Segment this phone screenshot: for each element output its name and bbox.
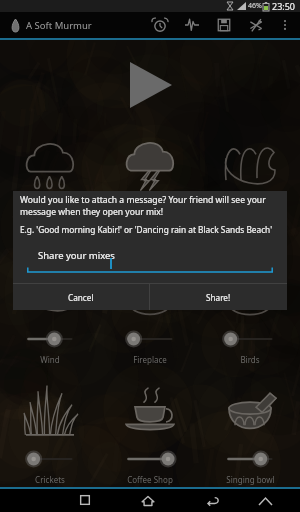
staticText: Fireplace [133,354,167,365]
button[interactable]: Wind [200,139,300,238]
staticText: Would you like to attach a message? Your… [20,194,266,206]
button[interactable]: Recents [61,489,105,512]
button[interactable]: Coffee Shop [100,386,200,485]
button[interactable]: Hide keyboard [256,492,274,510]
button[interactable]: Timer [144,12,176,38]
staticText: 23:50 [272,0,296,12]
button[interactable]: Wind [0,266,100,365]
staticText: Cancel [68,292,94,303]
staticText: A Soft Murmur [26,19,92,32]
staticText: Rain [42,227,59,238]
button[interactable]: Play [130,62,172,108]
button[interactable]: Rain [0,139,100,238]
staticText: Crickets [35,474,65,485]
staticText: Share your mixes [38,249,115,262]
staticText: Thunder [134,227,167,238]
staticText: message when they open your mix! [20,206,164,218]
staticText: Singing bowl [226,474,275,485]
button[interactable]: Home [126,489,170,512]
staticText: Wind [40,354,60,365]
staticText: 46% [248,1,262,11]
button[interactable]: Save [208,12,240,38]
staticText: Share! [206,292,231,303]
staticText: E.g. 'Good morning Kabir!' or 'Dancing r… [20,224,273,235]
button[interactable]: Fireplace [100,266,200,365]
button[interactable]: Equalizer [176,12,208,38]
button[interactable]: Back [191,489,235,512]
button[interactable]: Share your mixes [27,249,273,275]
button[interactable]: Cancel [13,284,149,310]
staticText: Coffee Shop [127,474,173,485]
staticText: Wind [240,227,260,238]
staticText: Birds [240,354,260,365]
button[interactable]: Share! [150,284,287,310]
button[interactable]: Thunder [100,139,200,238]
button[interactable]: Shuffle off [240,12,272,38]
button[interactable]: Crickets [0,386,100,485]
button[interactable]: More options [272,12,298,38]
button[interactable]: Birds [200,266,300,365]
button[interactable]: Singing bowl [200,386,300,485]
